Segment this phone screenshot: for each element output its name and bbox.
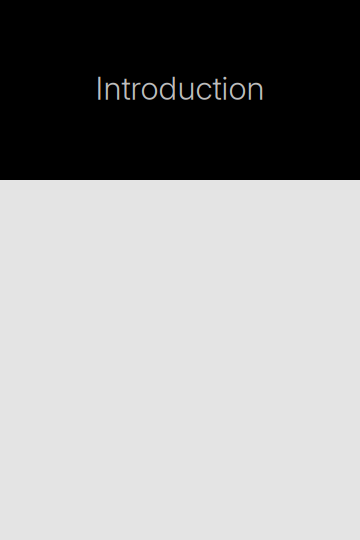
staticText: Introduction	[95, 69, 264, 107]
